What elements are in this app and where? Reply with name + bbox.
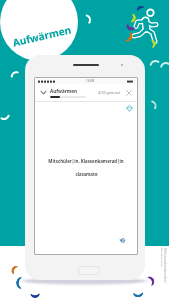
button[interactable]: Collapse [39, 88, 48, 97]
button[interactable]: Hint [124, 103, 135, 114]
button[interactable]: Play audio [117, 235, 128, 246]
staticText: 14:08 [86, 79, 95, 83]
staticText: Aufwärmen [11, 22, 73, 49]
staticText: Bild: wavebreakmedia / Shutterstock [161, 248, 167, 288]
staticText: 4/32 gewusst [98, 90, 121, 95]
button[interactable]: Collapse [35, 84, 137, 101]
button[interactable]: Close [124, 88, 133, 97]
staticText: classmate [75, 171, 98, 177]
staticText: Aufwärmen [50, 88, 77, 94]
staticText: Mitschüler|in, Klassenkamerad|in [48, 158, 124, 164]
button[interactable]: Home [78, 266, 100, 275]
